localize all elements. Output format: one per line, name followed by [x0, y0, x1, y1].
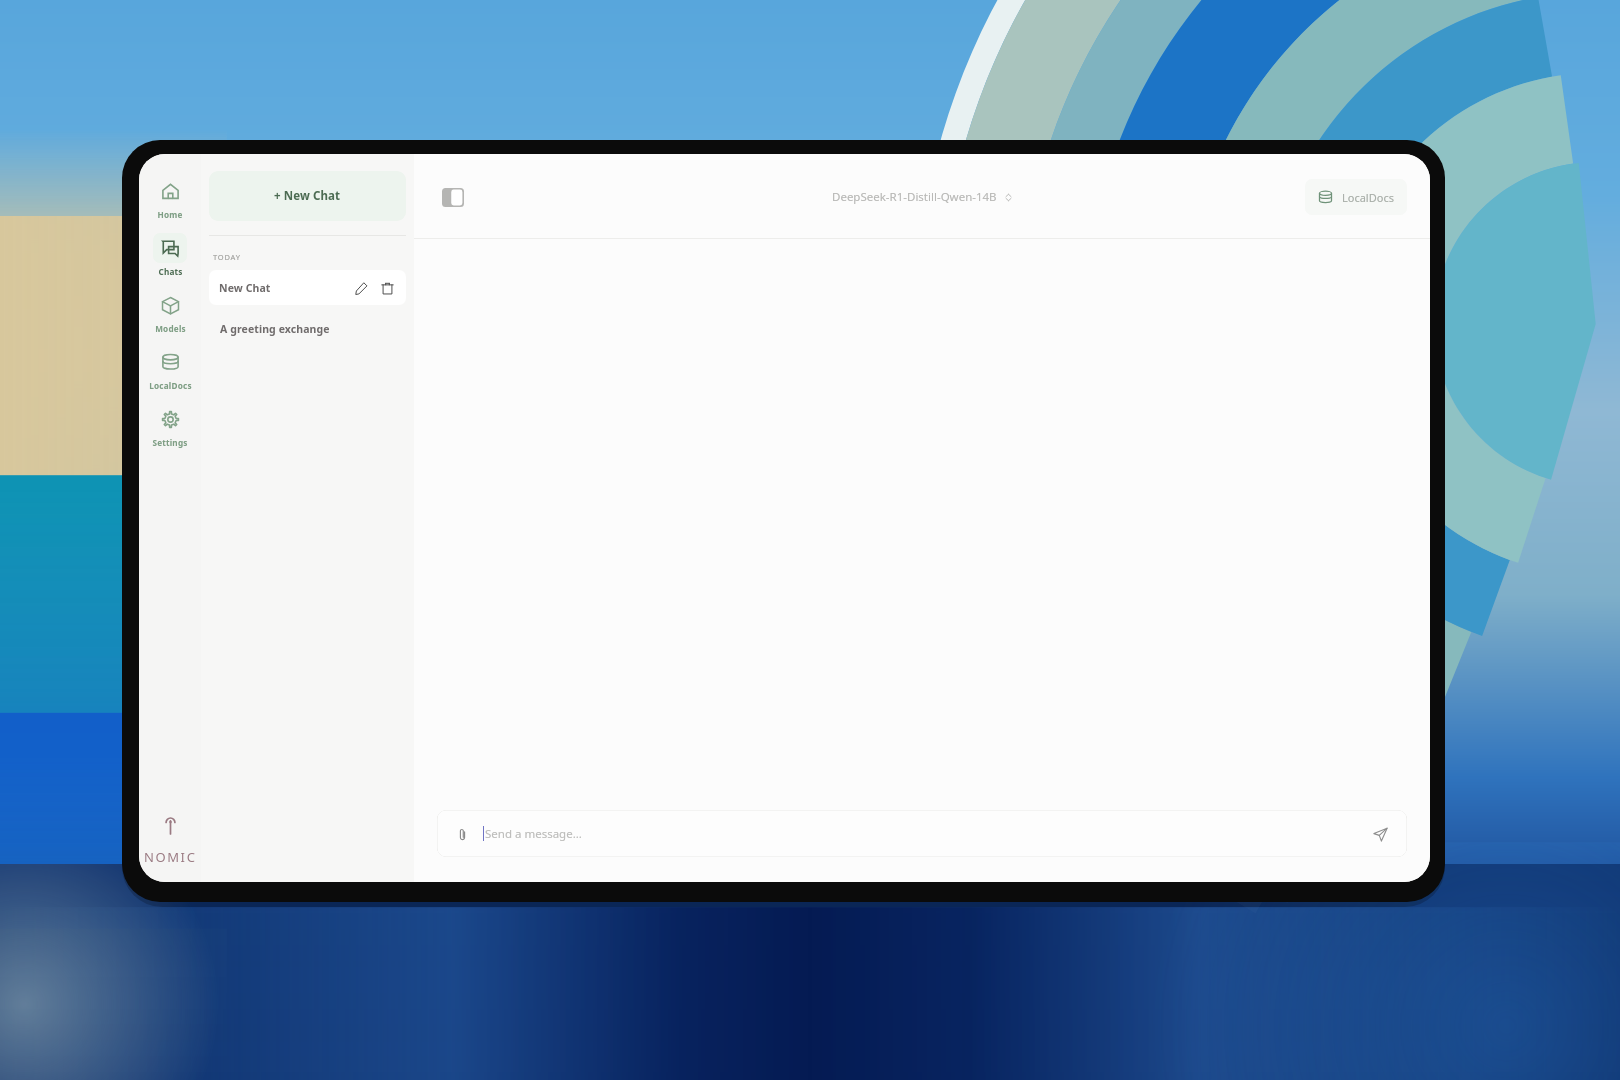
button[interactable]: LocalDocs [1305, 179, 1407, 215]
staticText: New Chat [219, 281, 271, 295]
button[interactable]: Delete chat [376, 277, 398, 299]
button[interactable]: Chats [142, 231, 198, 279]
staticText: DeepSeek-R1-Distill-Qwen-14B [832, 189, 997, 205]
staticText: LocalDocs [1342, 190, 1394, 205]
button[interactable]: Settings [142, 402, 198, 450]
staticText: Models [155, 323, 186, 334]
staticText: LocalDocs [149, 380, 192, 391]
button[interactable]: Models [142, 288, 198, 336]
button[interactable]: Home [142, 174, 198, 222]
staticText: Home [157, 209, 183, 220]
staticText: + New Chat [274, 188, 341, 204]
button[interactable]: Send message [1367, 821, 1393, 847]
staticText: NOMIC [144, 848, 197, 866]
button[interactable]: Rename chat [350, 277, 372, 299]
staticText: Chats [158, 266, 183, 277]
button[interactable]: Attach file [451, 823, 473, 845]
staticText: A greeting exchange [220, 322, 330, 336]
button[interactable]: DeepSeek-R1-Distill-Qwen-14B [824, 185, 1021, 209]
button[interactable]: Toggle sidebar [436, 180, 470, 214]
button[interactable]: Attach file [437, 810, 1407, 857]
staticText: Settings [152, 437, 188, 448]
button[interactable]: LocalDocs [142, 345, 198, 393]
button[interactable]: New Chat [209, 270, 406, 305]
staticText: Send a message... [485, 826, 582, 842]
button[interactable]: A greeting exchange [209, 316, 406, 342]
staticText: TODAY [213, 252, 241, 262]
button[interactable]: + New Chat [209, 171, 406, 221]
